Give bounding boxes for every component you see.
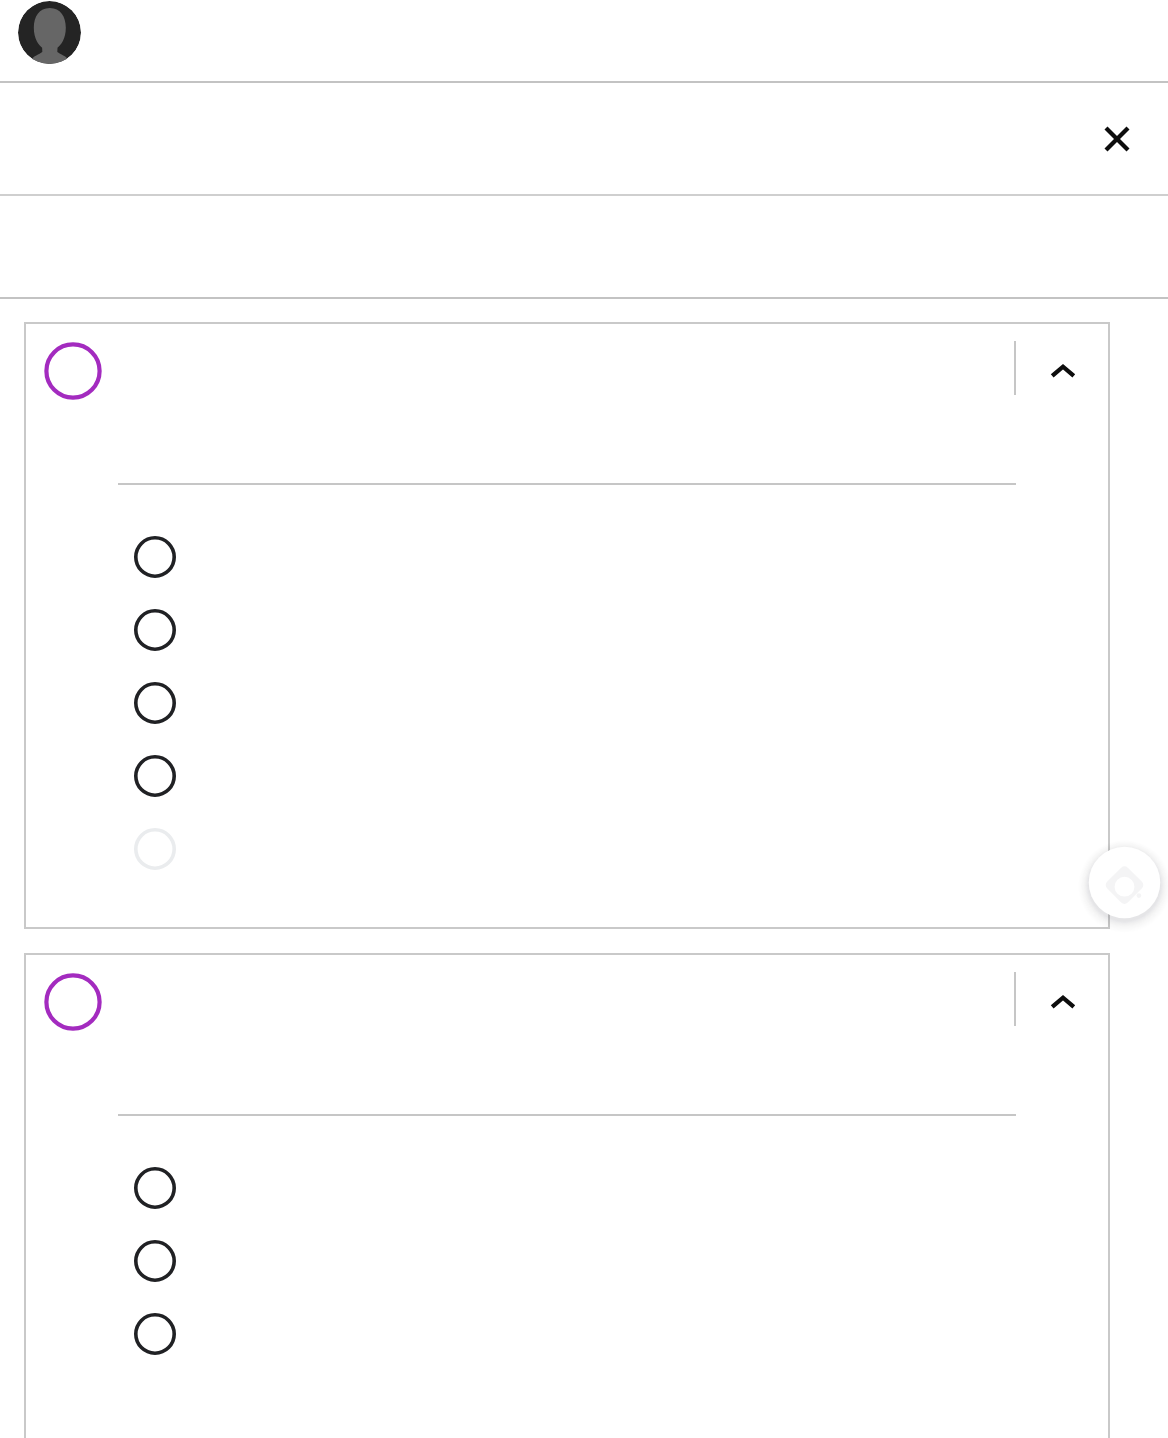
button[interactable]: Option 3 (118, 666, 1016, 739)
button[interactable]: Close (1088, 110, 1145, 167)
button[interactable]: Option 3 (118, 1297, 1016, 1370)
button[interactable]: Option 2 (118, 1224, 1016, 1297)
button[interactable]: Option 2 (118, 593, 1016, 666)
button[interactable]: Account (18, 1, 81, 64)
button[interactable]: Collapse question (24, 953, 1110, 1438)
button[interactable]: Collapse question (24, 322, 1110, 929)
button[interactable]: Collapse question (1034, 973, 1091, 1030)
button[interactable]: Option 1 (118, 520, 1016, 593)
button[interactable]: Search with Lens (1060, 818, 1168, 947)
button[interactable]: Option 1 (118, 1151, 1016, 1224)
button[interactable]: Collapse question (1034, 342, 1091, 399)
button[interactable]: Option 4 (118, 739, 1016, 812)
